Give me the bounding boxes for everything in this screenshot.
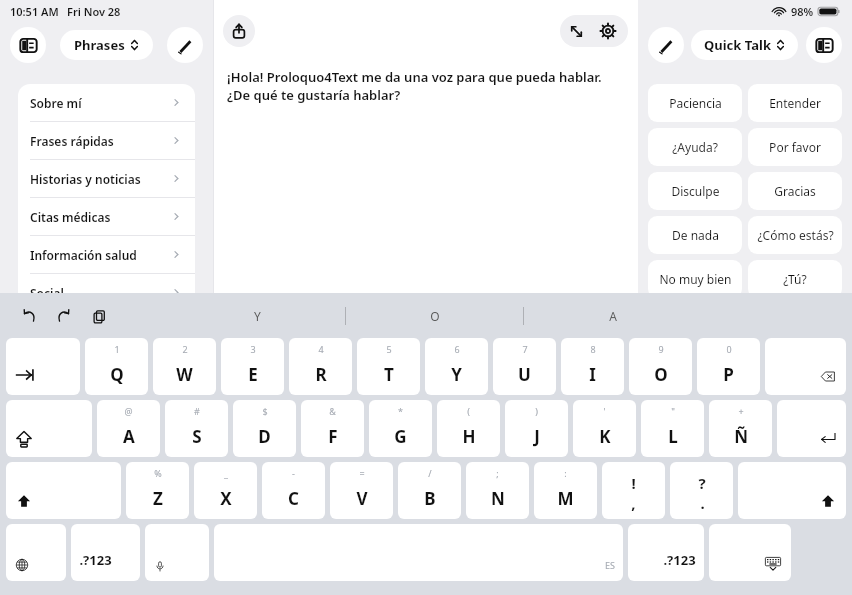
button[interactable]: ( — [437, 400, 500, 457]
button[interactable]: Undo — [18, 305, 40, 327]
staticText: C — [288, 487, 299, 510]
button[interactable]: ¿Tú? — [748, 260, 842, 298]
button[interactable]: % — [126, 462, 189, 519]
button[interactable] — [145, 524, 209, 581]
staticText: 8 — [590, 343, 596, 355]
staticText: _ — [224, 467, 228, 479]
button[interactable]: - — [262, 462, 325, 519]
button[interactable]: Expand — [560, 15, 592, 47]
button[interactable]: Gracias — [748, 172, 842, 210]
button[interactable] — [6, 462, 121, 519]
button[interactable]: Redo — [53, 305, 75, 327]
button[interactable]: Frases rápidas — [18, 122, 195, 159]
button[interactable]: 9 — [629, 338, 692, 395]
staticText: L — [668, 425, 678, 448]
button[interactable]: + — [709, 400, 772, 457]
button[interactable]: 0 — [697, 338, 760, 395]
button[interactable]: Toggle sidebar — [10, 27, 46, 63]
staticText: O — [654, 363, 668, 386]
button[interactable]: Delete — [590, 532, 622, 564]
staticText: Y — [451, 363, 462, 386]
button[interactable] — [6, 524, 66, 581]
button[interactable]: ? — [670, 462, 733, 519]
staticText: 5 — [386, 343, 392, 355]
button[interactable]: Paciencia — [648, 84, 742, 122]
button[interactable]: Edit — [167, 27, 203, 63]
staticText: .?123 — [79, 551, 112, 569]
staticText: O — [430, 308, 440, 324]
button[interactable]: Paste — [88, 305, 110, 327]
button[interactable] — [6, 400, 92, 457]
button[interactable]: Share — [223, 15, 255, 47]
staticText: H — [462, 425, 476, 448]
button[interactable]: Social — [18, 274, 195, 311]
button[interactable]: ¿Ayuda? — [648, 128, 742, 166]
button[interactable] — [6, 338, 80, 395]
staticText: F — [328, 425, 338, 448]
staticText: Sobre mí — [30, 95, 172, 111]
button[interactable]: ! — [602, 462, 665, 519]
staticText: ! — [631, 473, 636, 493]
button[interactable]: & — [301, 400, 364, 457]
button[interactable] — [738, 462, 846, 519]
staticText: 3 — [250, 343, 256, 355]
button[interactable]: : — [534, 462, 597, 519]
button[interactable]: ' — [573, 400, 636, 457]
button[interactable]: O — [346, 293, 524, 338]
button[interactable]: De nada — [648, 216, 742, 254]
staticText: - — [292, 467, 295, 479]
staticText: E — [248, 363, 258, 386]
button[interactable]: 5 — [357, 338, 420, 395]
button[interactable]: No muy bien — [648, 260, 742, 298]
button[interactable]: Y — [168, 293, 346, 338]
staticText: W — [176, 363, 193, 386]
button[interactable]: Edit — [648, 27, 684, 63]
staticText: Paciencia — [669, 95, 722, 111]
button[interactable] — [777, 400, 846, 457]
button[interactable]: # — [165, 400, 228, 457]
button[interactable]: .?123 — [628, 524, 704, 581]
staticText: ES — [605, 559, 615, 571]
button[interactable]: Toggle sidebar — [806, 27, 842, 63]
button[interactable]: .?123 — [71, 524, 140, 581]
staticText: 6 — [454, 343, 460, 355]
button[interactable] — [765, 338, 846, 395]
staticText: 2 — [182, 343, 188, 355]
button[interactable]: ; — [466, 462, 529, 519]
button[interactable]: Settings — [592, 15, 624, 47]
button[interactable]: Sobre mí — [18, 84, 195, 121]
button[interactable]: 2 — [153, 338, 216, 395]
button[interactable]: A — [524, 293, 702, 338]
staticText: J — [534, 425, 540, 448]
button[interactable]: 4 — [289, 338, 352, 395]
button[interactable]: Información salud — [18, 236, 195, 273]
button[interactable]: Historias y noticias — [18, 160, 195, 197]
button[interactable]: Por favor — [748, 128, 842, 166]
button[interactable]: * — [369, 400, 432, 457]
button[interactable]: " — [641, 400, 704, 457]
staticText: ? — [698, 473, 706, 493]
button[interactable]: Disculpe — [648, 172, 742, 210]
staticText: M — [557, 487, 574, 510]
button[interactable]: 1 — [85, 338, 148, 395]
button[interactable]: = — [330, 462, 393, 519]
button[interactable]: Citas médicas — [18, 198, 195, 235]
button[interactable] — [709, 524, 791, 581]
button[interactable]: 3 — [221, 338, 284, 395]
button[interactable]: 6 — [425, 338, 488, 395]
button[interactable]: Quick Talk — [691, 30, 798, 60]
staticText: * — [398, 405, 403, 417]
button[interactable]: _ — [194, 462, 257, 519]
button[interactable]: / — [398, 462, 461, 519]
button[interactable]: ) — [505, 400, 568, 457]
button[interactable]: @ — [97, 400, 160, 457]
staticText: Por favor — [769, 139, 821, 155]
button[interactable]: Phrases — [60, 30, 153, 60]
button[interactable]: 7 — [493, 338, 556, 395]
button[interactable]: ¿Cómo estás? — [748, 216, 842, 254]
button[interactable]: $ — [233, 400, 296, 457]
button[interactable]: Entender — [748, 84, 842, 122]
button[interactable]: 8 — [561, 338, 624, 395]
